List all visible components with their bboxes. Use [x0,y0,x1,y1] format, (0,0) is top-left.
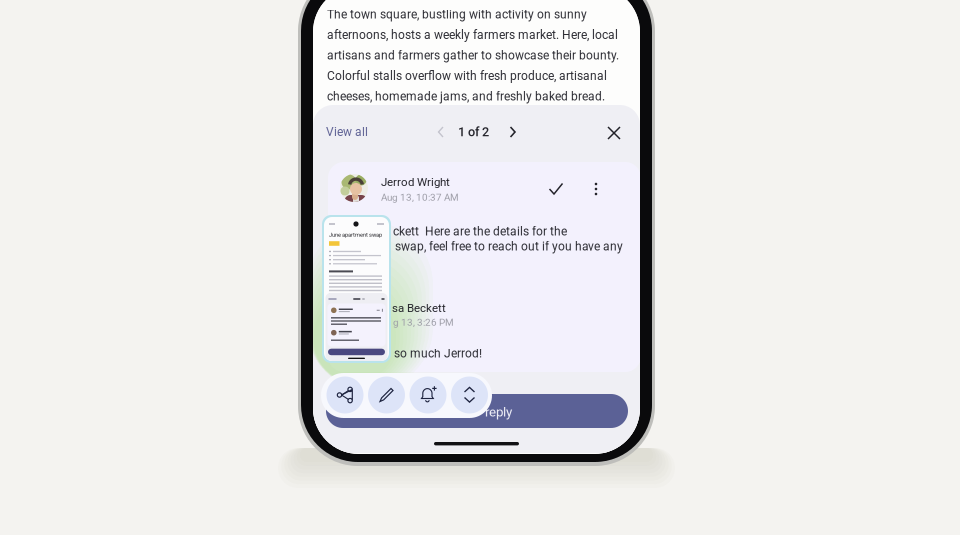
button[interactable]: Next comment [505,122,521,142]
staticText: ckett Here are the details for the [393,224,567,239]
staticText: cheeses, homemade jams, and freshly bake… [327,89,605,104]
button[interactable]: More options [590,181,602,197]
staticText: so much Jerrod! [394,346,482,361]
button[interactable]: Share [326,376,363,413]
staticText: swap, feel free to reach out if you have… [395,239,623,254]
staticText: June apartment swap [329,231,382,238]
staticText: Jerrod Wright [381,175,450,189]
staticText: reply [485,404,512,420]
button[interactable]: Previous comment [433,122,449,142]
staticText: Colorful stalls overflow with fresh prod… [327,69,607,83]
staticText: sa Beckett [392,301,446,315]
staticText: g 13, 3:26 PM [393,317,454,328]
staticText: View all [326,125,368,139]
button[interactable]: Reorder [451,376,488,413]
button[interactable]: Notifications [409,376,446,413]
button[interactable]: Resolve comment [548,182,564,196]
button[interactable]: Edit [368,376,405,413]
staticText: Aug 13, 10:37 AM [381,192,459,203]
staticText: 1 of 2 [458,125,489,139]
staticText: afternoons, hosts a weekly farmers marke… [327,28,618,42]
button[interactable]: Close [605,124,623,142]
staticText: artisans and farmers gather to showcase … [327,48,619,63]
button[interactable]: View all [326,125,368,139]
staticText: The town square, bustling with activity … [327,7,587,22]
button[interactable]: reply [326,394,628,428]
